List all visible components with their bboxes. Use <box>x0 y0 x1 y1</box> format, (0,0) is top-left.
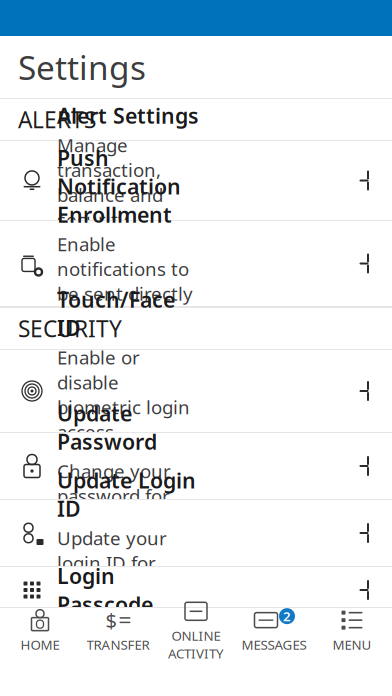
button[interactable]: HOME <box>1 608 79 654</box>
button[interactable]: Login Passcode <box>0 567 392 613</box>
staticText: on your mobile device <box>57 447 191 497</box>
staticText: Change your password for online banking <box>57 459 189 533</box>
button[interactable]: TRANSFER <box>79 608 157 654</box>
staticText: Push Notification Enrollment <box>57 144 181 229</box>
button[interactable]: MENU <box>313 608 391 654</box>
button[interactable]: Update Password <box>0 433 392 499</box>
staticText: alerts <box>57 235 107 260</box>
staticText: MENU <box>332 636 371 653</box>
staticText: SECURITY <box>18 313 122 343</box>
staticText: this device via push alerts <box>57 334 179 383</box>
button[interactable]: MESSAGES <box>235 608 313 654</box>
button[interactable]: Touch/Face ID <box>0 350 392 432</box>
staticText: Alert Settings <box>57 101 199 130</box>
staticText: Manage transaction, balance and security <box>57 133 163 232</box>
button[interactable]: Push Notification Enrollment <box>0 221 392 306</box>
staticText: $ <box>105 607 116 633</box>
staticText: ACTIVITY <box>168 644 224 662</box>
staticText: Login Passcode <box>57 562 153 618</box>
button[interactable]: Alert Settings <box>0 141 392 220</box>
staticText: Touch/Face ID <box>57 285 175 342</box>
staticText: Enable or disable biometric login access <box>57 345 190 444</box>
button[interactable]: Update Login ID <box>0 500 392 566</box>
staticText: Enable notifications to be sent directly… <box>57 232 193 331</box>
staticText: 2 <box>283 607 291 625</box>
staticText: Settings <box>18 45 146 89</box>
staticText: HOME <box>20 636 59 653</box>
staticText: TRANSFER <box>86 636 149 653</box>
staticText: ONLINE <box>171 627 220 644</box>
button[interactable]: ONLINE ACTIVITY <box>157 608 235 654</box>
staticText: ALERTS <box>18 104 96 134</box>
staticText: Update Password <box>57 399 157 456</box>
staticText: MESSAGES <box>241 636 306 653</box>
staticText: Update Login ID <box>57 466 196 523</box>
staticText: Update your login ID for online banking <box>57 526 189 600</box>
